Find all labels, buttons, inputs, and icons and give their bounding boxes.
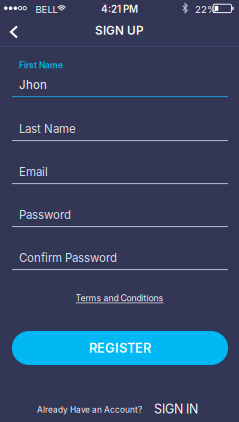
staticText: SIGN IN <box>154 401 198 416</box>
staticText: Email <box>19 165 48 179</box>
staticText: REGISTER <box>89 340 151 356</box>
button[interactable]: Back <box>0 18 28 46</box>
staticText: Confirm Password <box>19 251 117 265</box>
staticText: Jhon <box>19 78 47 92</box>
staticText: Password <box>19 208 71 222</box>
button[interactable]: SIGN IN <box>154 401 239 416</box>
staticText: 22% <box>195 4 216 15</box>
staticText: BELL <box>35 4 57 15</box>
staticText: 4:21 PM <box>101 3 138 15</box>
button[interactable]: Terms and Conditions <box>0 290 239 306</box>
button[interactable]: REGISTER <box>12 331 228 365</box>
staticText: Last Name <box>19 122 76 136</box>
staticText: Already Have an Account? <box>37 405 142 415</box>
staticText: First Name <box>19 60 63 70</box>
staticText: Terms and Conditions <box>75 293 163 303</box>
staticText: SIGN UP <box>95 23 144 38</box>
